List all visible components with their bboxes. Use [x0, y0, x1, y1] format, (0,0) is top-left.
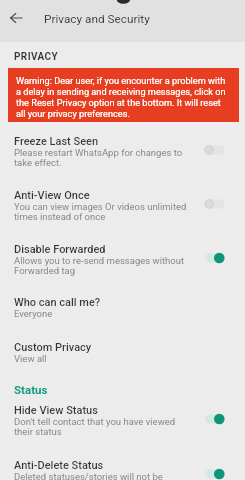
button[interactable]: Hide View Status	[0, 395, 245, 449]
staticText: Everyone	[14, 308, 53, 319]
staticText: You can view images Or videos unlimited …	[14, 201, 187, 222]
button[interactable]: Disable Forwarded	[0, 234, 245, 288]
button[interactable]: Warning: Dear user, if you encounter a p…	[8, 68, 239, 122]
button[interactable]: Toggle off	[200, 193, 230, 215]
button[interactable]: Back	[3, 5, 29, 31]
staticText: Deleted statuses/stories will not be	[14, 471, 163, 480]
button[interactable]: PRIVACY	[14, 51, 63, 63]
button[interactable]: Toggle off	[200, 139, 230, 161]
staticText: Disable Forwarded	[14, 243, 106, 256]
staticText: Don't tell contact that you have viewed …	[14, 416, 176, 437]
button[interactable]: Anti-Delete Status	[0, 450, 245, 480]
staticText: Anti-Delete Status	[14, 459, 104, 472]
staticText: Who can call me?	[14, 296, 101, 309]
button[interactable]: Freeze Last Seen	[0, 126, 245, 180]
button[interactable]: Status	[14, 383, 52, 396]
button[interactable]: Toggle on	[200, 247, 230, 269]
button[interactable]: Anti-View Once	[0, 180, 245, 234]
staticText: Please restart WhatsApp for changes to t…	[14, 147, 183, 168]
button[interactable]: Toggle on	[200, 408, 230, 430]
staticText: Warning: Dear user, if you encounter a p…	[16, 75, 232, 119]
staticText: Hide View Status	[14, 404, 98, 417]
staticText: Custom Privacy	[14, 341, 92, 354]
staticText: View all	[14, 353, 47, 364]
staticText: Privacy and Security	[44, 12, 150, 26]
staticText: Freeze Last Seen	[14, 135, 99, 148]
button[interactable]: Custom Privacy	[0, 332, 245, 377]
staticText: Anti-View Once	[14, 189, 90, 202]
staticText: Allows you to re-send messages without F…	[14, 255, 185, 276]
button[interactable]: Toggle on	[200, 463, 230, 480]
button[interactable]: Who can call me?	[0, 287, 245, 332]
